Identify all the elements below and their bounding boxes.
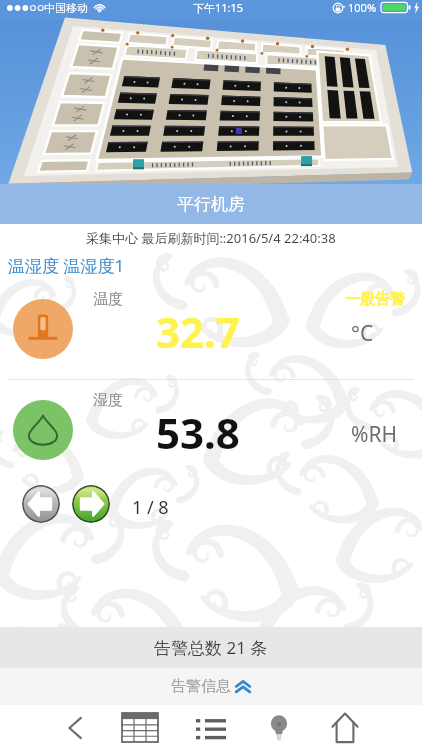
button[interactable]: 告警信息 (0, 668, 422, 705)
staticText: 采集中心 最后刷新时间::2016/5/4 22:40:38 (86, 229, 336, 247)
staticText: 1 / 8 (132, 495, 169, 520)
staticText: 下午11:15 (193, 0, 244, 15)
staticText: °C (351, 319, 374, 348)
staticText: 告警总数 21 条 (154, 636, 268, 659)
button[interactable]: Back (53, 705, 97, 750)
staticText: 温度 (93, 290, 123, 309)
button[interactable]: Home (323, 705, 367, 750)
button[interactable] (13, 400, 73, 460)
staticText: 中国移动 (44, 1, 88, 15)
button[interactable]: Previous (22, 485, 60, 523)
button[interactable]: Alerts (257, 705, 301, 750)
staticText: 湿度 (93, 391, 123, 410)
button[interactable]: List (189, 705, 233, 750)
button[interactable]: Table (118, 705, 162, 750)
button[interactable]: Next (72, 485, 110, 523)
button[interactable] (13, 299, 73, 359)
staticText: 100% (348, 0, 377, 15)
button[interactable]: 告警总数 21 条 (0, 627, 422, 668)
staticText: 32.7 (156, 303, 240, 360)
staticText: 53.8 (156, 404, 240, 461)
staticText: 一般告警 (345, 290, 405, 309)
staticText: 温湿度 温湿度1 (8, 254, 125, 277)
staticText: %RH (351, 420, 398, 449)
staticText: 告警信息 (171, 677, 231, 696)
staticText: 平行机房 (177, 194, 245, 215)
